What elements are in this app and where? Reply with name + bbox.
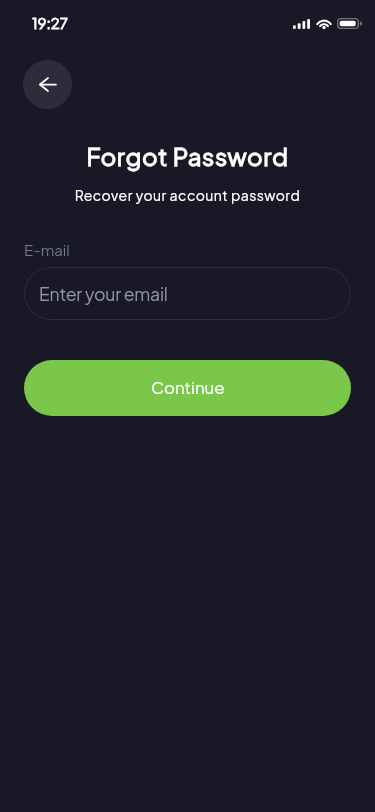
staticText: E-mail (24, 240, 70, 259)
staticText: Enter your email (39, 283, 168, 305)
button[interactable]: Back (23, 60, 72, 109)
staticText: Recover your account password (0, 186, 375, 204)
staticText: Continue (151, 377, 225, 398)
staticText: 19:27 (32, 13, 68, 32)
staticText: Forgot Password (0, 141, 375, 171)
button[interactable]: Enter your email (24, 267, 351, 320)
button[interactable]: Continue (24, 360, 351, 416)
